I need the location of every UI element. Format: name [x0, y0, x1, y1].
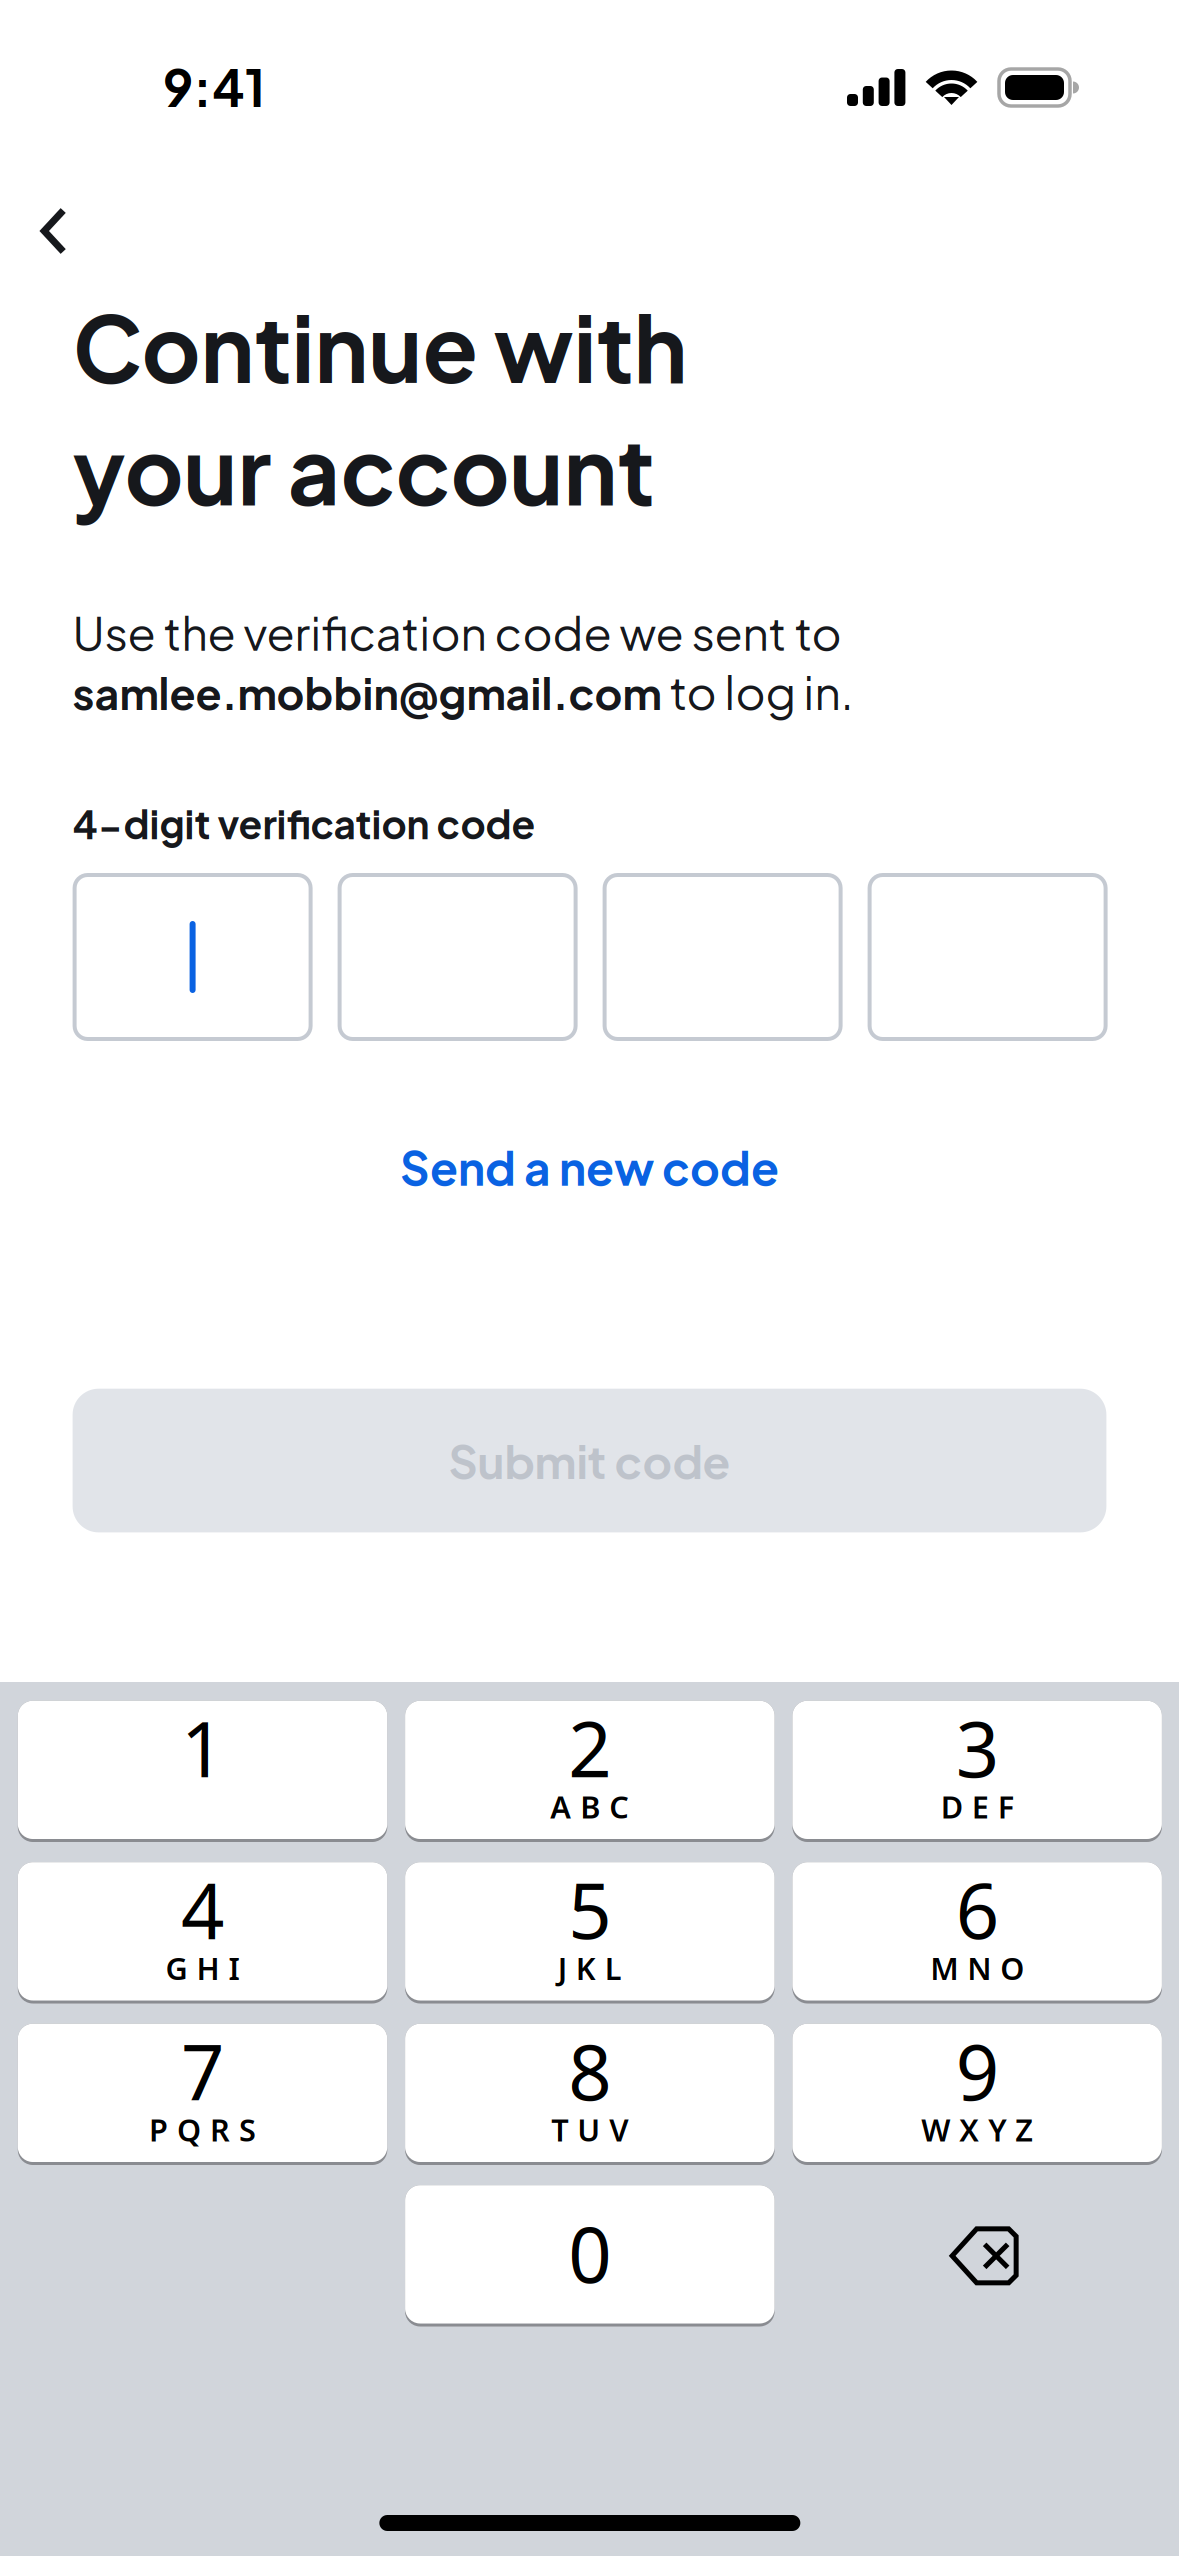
button[interactable]: 6: [792, 1862, 1162, 2003]
staticText: B: [580, 1786, 600, 1827]
staticText: 9: [956, 2020, 999, 2121]
button[interactable]: 5: [405, 1862, 775, 2003]
staticText: 3: [956, 1697, 999, 1798]
button[interactable]: Verification code digit: [603, 873, 843, 1041]
staticText: 7: [181, 2020, 224, 2121]
staticText: Q: [177, 2109, 201, 2150]
staticText: 8: [568, 2020, 611, 2121]
button[interactable]: Submit code: [73, 1389, 1106, 1532]
staticText: O: [1000, 1948, 1024, 1988]
button[interactable]: Delete: [792, 2185, 1162, 2326]
staticText: K: [576, 1948, 596, 1988]
staticText: 9:41: [163, 55, 265, 118]
staticText: N: [967, 1948, 991, 1988]
staticText: Use the verification code we sent to: [73, 603, 842, 661]
button[interactable]: Verification code digit: [73, 873, 313, 1041]
button[interactable]: Verification code digit: [868, 873, 1108, 1041]
staticText: C: [609, 1786, 629, 1827]
staticText: 2: [568, 1697, 611, 1798]
button[interactable]: Verification code digit: [338, 873, 578, 1041]
staticText: S: [239, 2109, 256, 2150]
staticText: Continue with: [73, 289, 688, 403]
staticText: T: [551, 2109, 568, 2150]
staticText: H: [197, 1948, 220, 1988]
button[interactable]: 7: [18, 2024, 387, 2165]
staticText: Z: [1015, 2109, 1033, 2150]
button[interactable]: 9: [792, 2024, 1162, 2165]
button[interactable]: 3: [792, 1701, 1162, 1842]
staticText: J: [558, 1948, 567, 1988]
staticText: 0: [568, 2203, 611, 2304]
staticText: M: [930, 1948, 958, 1988]
staticText: L: [605, 1948, 622, 1988]
button[interactable]: 4: [18, 1862, 387, 2003]
staticText: F: [998, 1786, 1014, 1827]
button[interactable]: Send a new code: [0, 1131, 1179, 1203]
button[interactable]: Back: [0, 177, 117, 283]
staticText: X: [959, 2109, 979, 2150]
staticText: G: [166, 1948, 188, 1988]
staticText: D: [941, 1786, 963, 1827]
button[interactable]: 8: [405, 2024, 775, 2165]
staticText: Submit code: [448, 1432, 730, 1489]
staticText: 4: [181, 1859, 224, 1960]
staticText: 5: [568, 1859, 611, 1960]
staticText: samlee.mobbin@gmail.com to log in.: [73, 663, 854, 719]
staticText: R: [210, 2109, 230, 2150]
staticText: E: [972, 1786, 989, 1827]
staticText: Send a new code: [400, 1138, 779, 1196]
staticText: I: [229, 1948, 240, 1988]
staticText: W: [921, 2109, 950, 2150]
staticText: 1: [181, 1697, 224, 1798]
button[interactable]: 2: [405, 1701, 775, 1842]
staticText: U: [577, 2109, 600, 2150]
staticText: 4-digit verification code: [73, 799, 536, 848]
staticText: 6: [956, 1859, 999, 1960]
staticText: P: [149, 2109, 168, 2150]
staticText: your account: [73, 411, 655, 526]
staticText: V: [609, 2109, 628, 2150]
staticText: A: [550, 1786, 571, 1827]
button[interactable]: 1: [18, 1701, 387, 1842]
staticText: Y: [988, 2109, 1006, 2150]
button[interactable]: 0: [405, 2185, 775, 2326]
